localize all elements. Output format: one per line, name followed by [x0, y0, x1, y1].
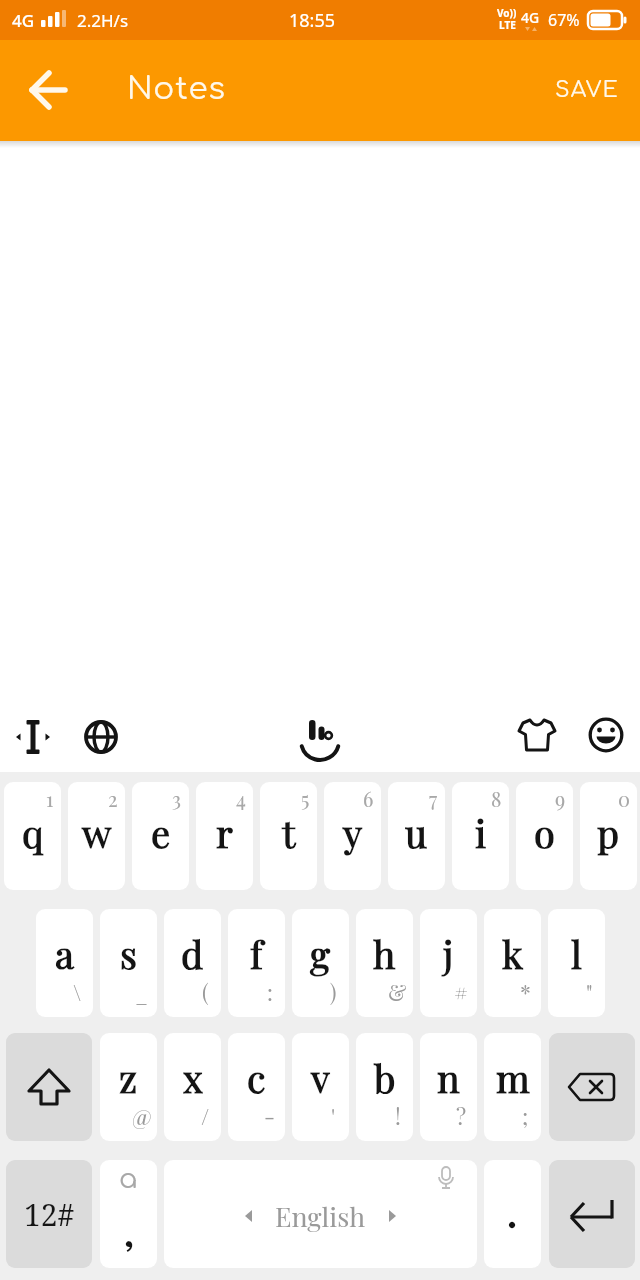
staticText: 5 [301, 785, 310, 812]
staticText: o [534, 807, 555, 858]
button[interactable] [294, 711, 346, 763]
button[interactable]: 9 [516, 782, 573, 890]
button[interactable]: c [228, 1033, 285, 1141]
button[interactable]: d [164, 909, 221, 1017]
button[interactable]: SAVE [555, 78, 620, 103]
staticText: 4 [236, 785, 246, 812]
button[interactable]: b [356, 1033, 413, 1141]
button[interactable]: n [420, 1033, 477, 1141]
button[interactable]: English [164, 1160, 477, 1268]
staticText: n [437, 1052, 460, 1103]
staticText: y [343, 807, 363, 858]
staticText: . [507, 1184, 518, 1237]
button[interactable]: 3 [132, 782, 189, 890]
staticText: 67% [548, 9, 580, 31]
staticText: c [247, 1052, 266, 1103]
staticText: 9 [555, 785, 566, 812]
staticText: t [282, 807, 296, 858]
button[interactable]: j [420, 909, 477, 1017]
staticText: 2 [108, 785, 118, 812]
button[interactable] [79, 715, 123, 759]
staticText: q [22, 807, 44, 858]
button[interactable]: 1 [4, 782, 61, 890]
staticText: f [250, 928, 263, 979]
staticText: ; [522, 1101, 529, 1130]
staticText: v [311, 1052, 330, 1103]
staticText: 7 [429, 785, 438, 812]
button[interactable]: f [228, 909, 285, 1017]
staticText: " [586, 977, 593, 1006]
staticText: LTE [499, 18, 516, 32]
button[interactable]: a [100, 1160, 157, 1268]
staticText: _ [135, 977, 149, 1006]
staticText: 0 [618, 785, 630, 812]
staticText: k [502, 928, 523, 979]
staticText: a [55, 928, 74, 979]
button[interactable]: 4 [196, 782, 253, 890]
button[interactable]: s [100, 909, 157, 1017]
button[interactable] [6, 1033, 92, 1141]
button[interactable] [584, 713, 628, 757]
staticText: 6 [363, 785, 374, 812]
button[interactable]: z [100, 1033, 157, 1141]
staticText: ? [456, 1101, 467, 1130]
staticText: Notes [127, 72, 226, 107]
button[interactable]: 2 [68, 782, 125, 890]
button[interactable]: g [292, 909, 349, 1017]
staticText: / [201, 1101, 210, 1130]
staticText: 18:55 [289, 8, 336, 33]
staticText: ' [331, 1101, 336, 1130]
button[interactable]: 0 [580, 782, 637, 890]
staticText: j [443, 928, 454, 979]
button[interactable] [515, 713, 559, 757]
staticText: b [374, 1052, 396, 1103]
staticText: u [405, 807, 428, 858]
staticText: \ [73, 977, 82, 1006]
staticText: 4G [12, 9, 35, 32]
button[interactable]: h [356, 909, 413, 1017]
button[interactable]: l [548, 909, 605, 1017]
staticText: p [597, 807, 620, 858]
button[interactable]: a [36, 909, 93, 1017]
button[interactable]: . [484, 1160, 541, 1268]
button[interactable]: m [484, 1033, 541, 1141]
button[interactable]: k [484, 909, 541, 1017]
staticText: e [151, 807, 171, 858]
staticText: 2.2H/s [77, 9, 129, 32]
button[interactable]: x [164, 1033, 221, 1141]
staticText: SAVE [555, 78, 620, 103]
staticText: d [181, 928, 204, 979]
staticText: English [275, 1198, 366, 1234]
staticText: w [82, 807, 112, 858]
button[interactable]: 8 [452, 782, 509, 890]
staticText: - [264, 1101, 275, 1130]
staticText: , [124, 1205, 134, 1256]
button[interactable]: 6 [324, 782, 381, 890]
staticText: * [520, 977, 531, 1006]
staticText: s [120, 928, 137, 979]
staticText: 12# [24, 1194, 75, 1235]
button[interactable]: 5 [260, 782, 317, 890]
button[interactable]: 7 [388, 782, 445, 890]
staticText: 4G [521, 8, 540, 27]
staticText: ) [330, 977, 337, 1006]
staticText: l [571, 928, 582, 979]
staticText: Vo)) [497, 6, 517, 20]
staticText: h [373, 928, 396, 979]
staticText: : [267, 977, 273, 1006]
staticText: 8 [491, 785, 502, 812]
staticText: g [310, 928, 331, 979]
button[interactable]: 12# [6, 1160, 92, 1268]
button[interactable]: v [292, 1033, 349, 1141]
staticText: ! [395, 1101, 401, 1130]
button[interactable] [11, 715, 55, 759]
staticText: & [388, 977, 407, 1006]
staticText: 1 [46, 785, 54, 812]
staticText: @ [132, 1101, 152, 1130]
button[interactable] [549, 1033, 635, 1141]
staticText: i [475, 807, 487, 858]
staticText: a [119, 1164, 138, 1194]
staticText: ( [202, 977, 209, 1006]
button[interactable] [549, 1160, 635, 1268]
button[interactable] [24, 66, 72, 114]
